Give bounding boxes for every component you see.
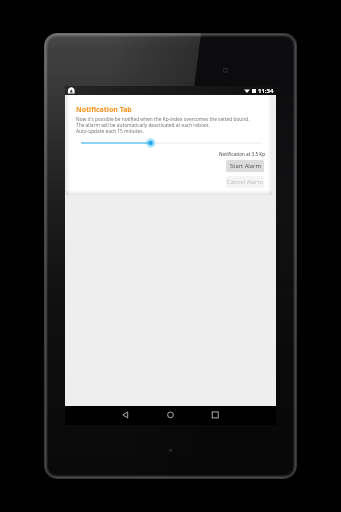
- staticText: Now it's possible be notified when the K…: [76, 116, 250, 123]
- staticText: Notification at 3.5 Kp: [219, 151, 266, 157]
- staticText: Start Alarm: [230, 162, 261, 170]
- staticText: Notification Tab: [76, 105, 132, 115]
- button[interactable]: Cancel Alarm: [226, 176, 264, 188]
- other: System navigation bar: [65, 406, 276, 425]
- staticText: The allarm will be automatically deactiv…: [76, 122, 210, 129]
- staticText: Cancel Alarm: [227, 178, 263, 186]
- button[interactable]: Start Alarm: [226, 160, 264, 172]
- staticText: 11:34: [258, 87, 274, 95]
- button[interactable]: [81, 138, 261, 148]
- staticText: Auto-update each 15 minutes.: [76, 128, 144, 135]
